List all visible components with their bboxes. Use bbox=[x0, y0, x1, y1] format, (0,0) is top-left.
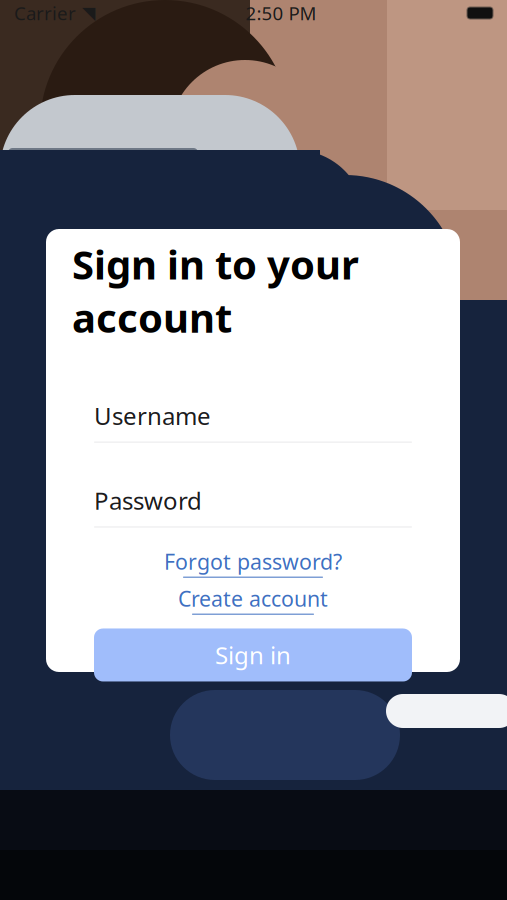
staticText: Create account bbox=[178, 584, 328, 613]
staticText: 2:50 PM bbox=[245, 1, 316, 25]
staticText: Sign in to your account bbox=[72, 237, 359, 344]
staticText: Password bbox=[94, 485, 202, 516]
button[interactable]: Create account bbox=[46, 584, 460, 614]
button[interactable]: Sign in bbox=[94, 628, 412, 681]
staticText: Sign in bbox=[215, 639, 291, 671]
staticText: ◥ bbox=[82, 3, 95, 23]
staticText: Forgot password? bbox=[164, 547, 342, 576]
staticText: Username bbox=[94, 400, 211, 432]
button[interactable]: Forgot password? bbox=[46, 547, 460, 577]
staticText: Carrier bbox=[14, 1, 76, 25]
